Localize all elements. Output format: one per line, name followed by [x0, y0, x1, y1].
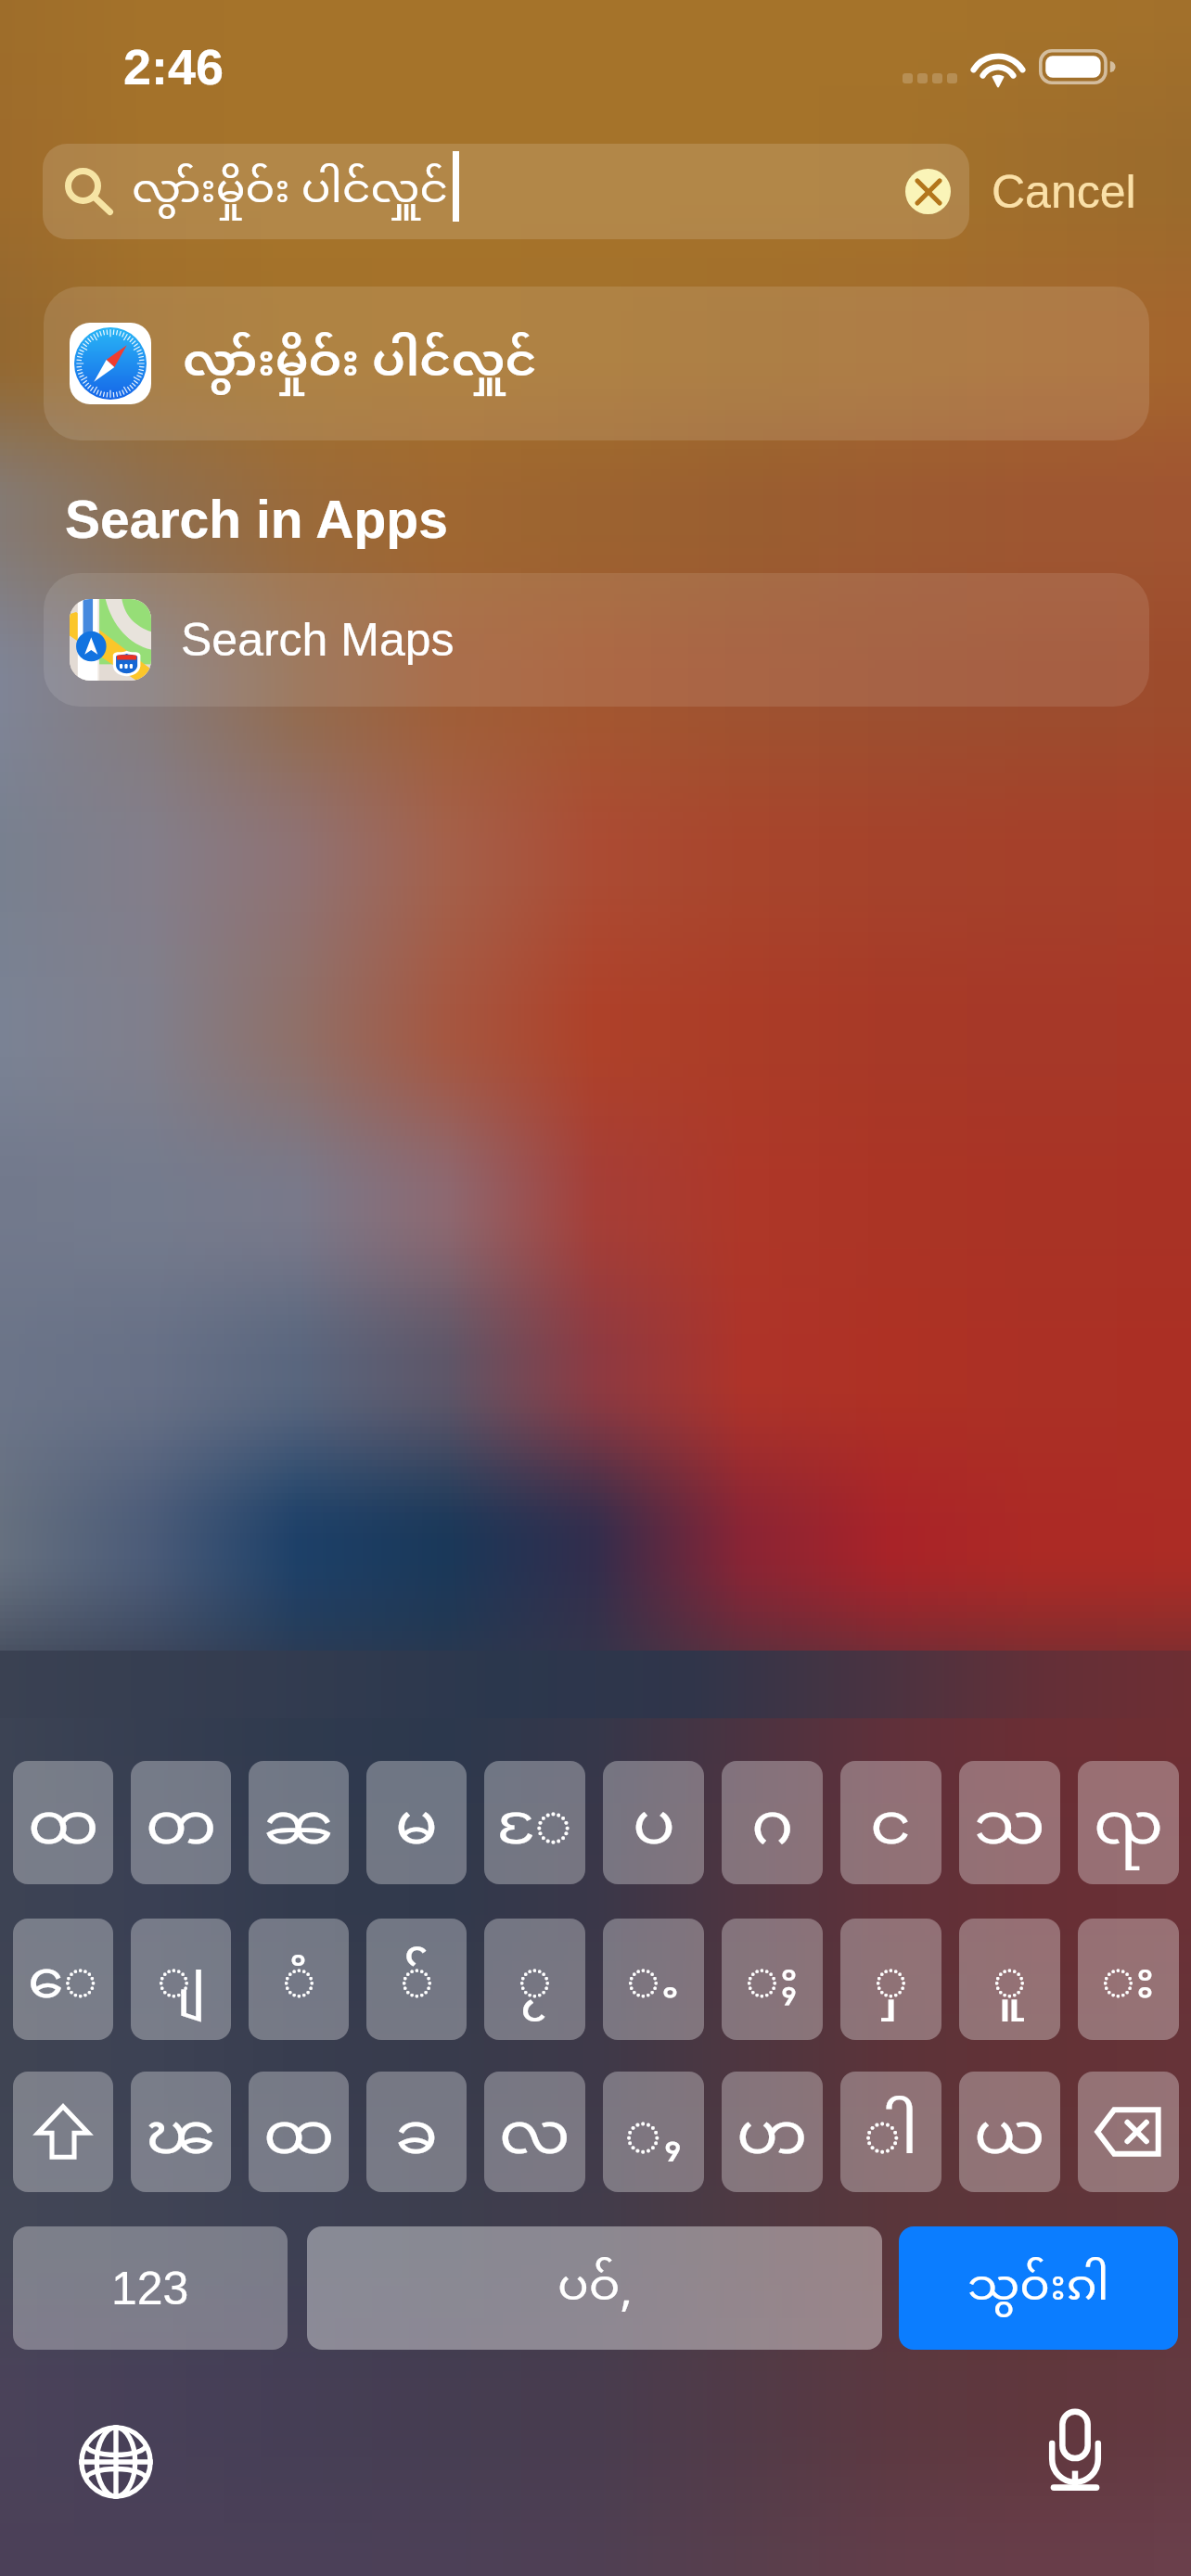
button[interactable]: Search Maps: [44, 573, 1149, 707]
button[interactable]: ထ: [13, 1761, 113, 1884]
staticText: ါ: [864, 2095, 918, 2181]
staticText: ှ: [874, 1945, 908, 2022]
staticText: ခ: [395, 2095, 438, 2181]
staticText: လွာ်းမှိုဝ်း ပါင်လှူင်: [183, 331, 537, 397]
staticText: ထ: [263, 2095, 335, 2181]
staticText: ယ: [974, 2095, 1045, 2181]
button[interactable]: Shift: [13, 2072, 113, 2192]
staticText: 123: [111, 2263, 189, 2315]
staticText: ံ: [282, 1945, 316, 2022]
staticText: ထ: [28, 1785, 99, 1871]
staticText: ဂ: [751, 1785, 794, 1871]
button[interactable]: ႂ: [484, 1919, 585, 2040]
staticText: ူ: [992, 1945, 1027, 2022]
staticText: ၺ: [1094, 1785, 1164, 1871]
button[interactable]: Switch keyboard language: [74, 2420, 158, 2504]
button[interactable]: ႉ: [603, 1919, 704, 2040]
button[interactable]: ခ: [366, 2072, 467, 2192]
staticText: တ: [146, 1785, 217, 1871]
button[interactable]: ေ: [13, 1919, 113, 2040]
button[interactable]: း: [1078, 1919, 1179, 2040]
staticText: လ: [499, 2095, 570, 2181]
button[interactable]: ယ: [959, 2072, 1060, 2192]
staticText: Search Maps: [181, 614, 455, 666]
button[interactable]: ၽ: [131, 2072, 231, 2192]
staticText: ပဝ်,: [557, 2257, 633, 2320]
button[interactable]: ၺ: [1078, 1761, 1179, 1884]
staticText: း: [1101, 1945, 1156, 2022]
button[interactable]: ါ: [840, 2072, 941, 2192]
button[interactable]: ဟ: [722, 2072, 823, 2192]
button[interactable]: လွာ်းမှိုဝ်း ပါင်လှူင်: [43, 144, 969, 239]
staticText: ႄ: [497, 1785, 572, 1871]
button[interactable]: သ: [959, 1761, 1060, 1884]
button[interactable]: မ: [366, 1761, 467, 1884]
button[interactable]: ်: [366, 1919, 467, 2040]
button[interactable]: ပ: [603, 1761, 704, 1884]
button[interactable]: ၼ: [249, 1761, 349, 1884]
button[interactable]: ံ: [249, 1919, 349, 2040]
button[interactable]: ႈ: [722, 1919, 823, 2040]
staticText: ၽ: [146, 2095, 217, 2181]
staticText: သွ၀်းၵါ: [967, 2257, 1109, 2320]
staticText: မ: [395, 1785, 438, 1871]
staticText: သ: [974, 1785, 1045, 1871]
staticText: င: [870, 1785, 912, 1871]
button[interactable]: ူ: [959, 1919, 1060, 2040]
staticText: ႇ: [624, 2095, 684, 2181]
staticText: ႂ: [518, 1945, 552, 2022]
staticText: ်: [400, 1945, 434, 2022]
staticText: ၼ: [263, 1785, 335, 1871]
button[interactable]: လ: [484, 2072, 585, 2192]
staticText: ႈ: [745, 1945, 800, 2022]
staticText: ဟ: [736, 2095, 808, 2181]
staticText: လွာ်းမှိုဝ်း ပါင်လှူင်: [132, 162, 449, 222]
staticText: ျ: [157, 1945, 206, 2022]
button[interactable]: တ: [131, 1761, 231, 1884]
button[interactable]: Clear text: [905, 169, 951, 214]
button[interactable]: Dictation: [1033, 2409, 1117, 2493]
staticText: 2:46: [123, 39, 224, 95]
staticText: ႉ: [626, 1945, 681, 2022]
button[interactable]: ထ: [249, 2072, 349, 2192]
button[interactable]: Cancel: [969, 144, 1158, 239]
button[interactable]: သွ၀်းၵါ: [899, 2226, 1178, 2350]
button[interactable]: င: [840, 1761, 941, 1884]
button[interactable]: ဂ: [722, 1761, 823, 1884]
button[interactable]: လွာ်းမှိုဝ်း ပါင်လှူင်: [44, 287, 1149, 440]
staticText: ေ: [28, 1945, 98, 2022]
button[interactable]: ပဝ်,: [307, 2226, 882, 2350]
button[interactable]: Backspace: [1078, 2072, 1179, 2192]
button[interactable]: ျ: [131, 1919, 231, 2040]
button[interactable]: ႇ: [603, 2072, 704, 2192]
staticText: Cancel: [992, 166, 1136, 218]
button[interactable]: ှ: [840, 1919, 941, 2040]
staticText: Search in Apps: [65, 490, 448, 549]
staticText: ပ: [633, 1785, 675, 1871]
button[interactable]: 123: [13, 2226, 288, 2350]
button[interactable]: ႄ: [484, 1761, 585, 1884]
